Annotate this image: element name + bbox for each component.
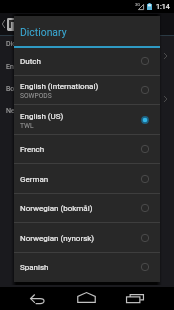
staticText: English (US) xyxy=(6,63,44,71)
staticText: English (US) xyxy=(20,112,64,121)
staticText: SOWPODS xyxy=(20,92,52,100)
staticText: TWL xyxy=(20,122,34,130)
button[interactable]: Home xyxy=(75,287,99,310)
button[interactable]: Norwegian (bokmål) xyxy=(14,193,160,223)
staticText: Norwegian (bokmål) xyxy=(20,204,93,213)
button[interactable]: Norwegian (nynorsk) xyxy=(14,223,160,253)
staticText: French xyxy=(20,145,45,154)
button[interactable]: French xyxy=(14,134,160,164)
staticText: 1:14 xyxy=(156,2,170,10)
staticText: Dictionary xyxy=(20,26,67,38)
staticText: Board size xyxy=(6,85,39,93)
staticText: Spanish xyxy=(20,263,49,272)
button[interactable]: Recent apps xyxy=(123,287,147,310)
button[interactable]: English (International) xyxy=(14,75,160,105)
staticText: German xyxy=(20,175,49,184)
staticText: English (International) xyxy=(20,82,99,91)
staticText: Norwegian (nynorsk) xyxy=(20,234,95,243)
staticText: Dictionary xyxy=(6,40,38,48)
staticText: New game xyxy=(6,107,40,115)
button[interactable]: German xyxy=(14,164,160,194)
button[interactable]: Back xyxy=(25,287,49,310)
button[interactable]: English (US) xyxy=(14,105,160,135)
button[interactable]: Dutch xyxy=(14,46,160,76)
staticText: 3G xyxy=(135,2,141,7)
button[interactable]: Spanish xyxy=(14,252,160,282)
staticText: Dutch xyxy=(20,57,41,66)
